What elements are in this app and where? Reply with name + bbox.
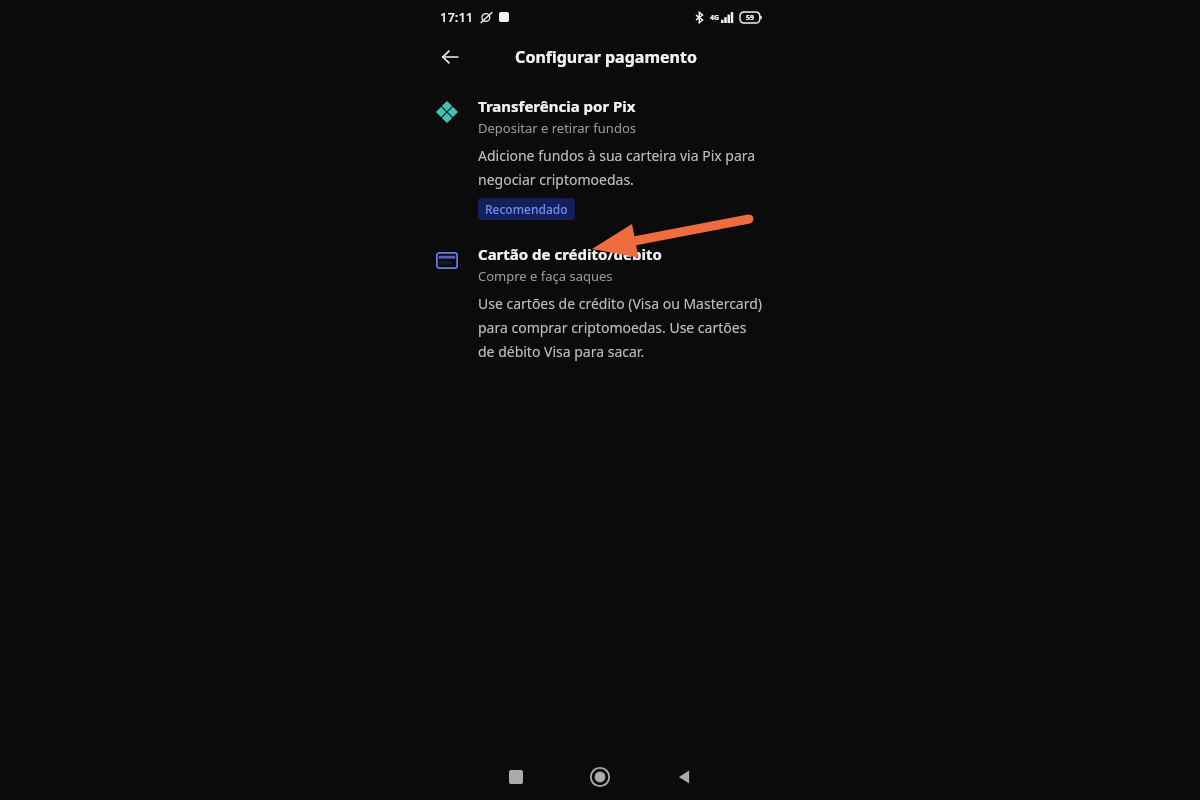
staticText: 59 [746,13,755,23]
staticText: Configurar pagamento [515,46,697,68]
staticText: 4G [710,13,720,23]
staticText: Compre e faça saques [478,267,613,285]
button[interactable]: Voltar [660,754,708,800]
button[interactable]: Recomendado [478,198,575,220]
staticText: Recomendado [485,201,568,217]
staticText: Transferência por Pix [478,96,636,116]
button[interactable]: Voltar [432,39,468,75]
staticText: Adicione fundos à sua carteira via Pix p… [478,146,764,189]
button[interactable]: Início [576,754,624,800]
staticText: Depositar e retirar fundos [478,119,636,137]
button[interactable]: Cartão de crédito/débito [426,244,774,361]
staticText: Use cartões de crédito (Visa ou Masterca… [478,294,764,361]
staticText: 17:11 [440,8,474,26]
button[interactable]: Recentes [492,754,540,800]
staticText: Cartão de crédito/débito [478,244,662,264]
button[interactable]: Transferência por Pix [426,96,774,220]
